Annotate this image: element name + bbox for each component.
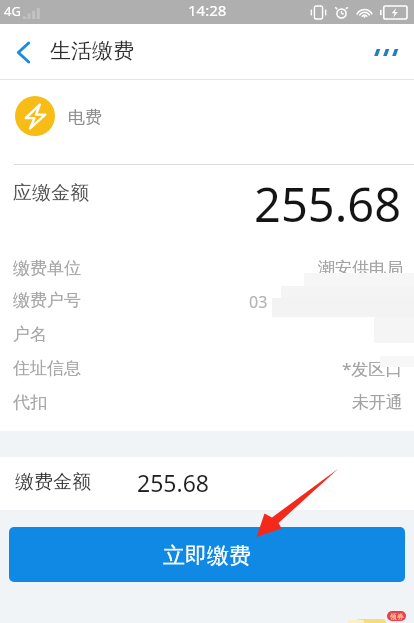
staticText: 缴费金额: [15, 470, 91, 494]
button[interactable]: 户名: [0, 317, 414, 351]
staticText: 生活缴费: [50, 38, 134, 64]
staticText: 255.68: [254, 172, 402, 224]
staticText: 潮安供电局: [318, 258, 403, 279]
staticText: 4G: [4, 2, 21, 20]
staticText: 领券: [390, 612, 404, 621]
staticText: 缴费户号: [13, 290, 81, 311]
button[interactable]: Promotion badge: [387, 611, 406, 621]
staticText: 户名: [13, 324, 47, 345]
staticText: 住址信息: [13, 358, 81, 379]
button[interactable]: More options: [363, 28, 411, 76]
button[interactable]: Back: [0, 29, 46, 75]
staticText: 未开通: [352, 392, 403, 413]
staticText: 代扣: [13, 392, 47, 413]
staticText: 255.68: [137, 467, 209, 498]
button[interactable]: [15, 96, 55, 136]
button[interactable]: 缴费单位: [0, 251, 414, 285]
staticText: 立即缴费: [163, 542, 251, 570]
button[interactable]: 缴费户号: [0, 283, 414, 317]
staticText: 电费: [68, 107, 102, 128]
button[interactable]: 立即缴费: [9, 527, 405, 582]
button[interactable]: 代扣: [0, 385, 414, 419]
staticText: 应缴金额: [13, 181, 89, 205]
staticText: *发区口: [342, 357, 403, 380]
staticText: 14:28: [188, 0, 227, 20]
button[interactable]: 住址信息: [0, 351, 414, 385]
staticText: 缴费单位: [13, 258, 81, 279]
staticText: 03: [249, 291, 268, 313]
